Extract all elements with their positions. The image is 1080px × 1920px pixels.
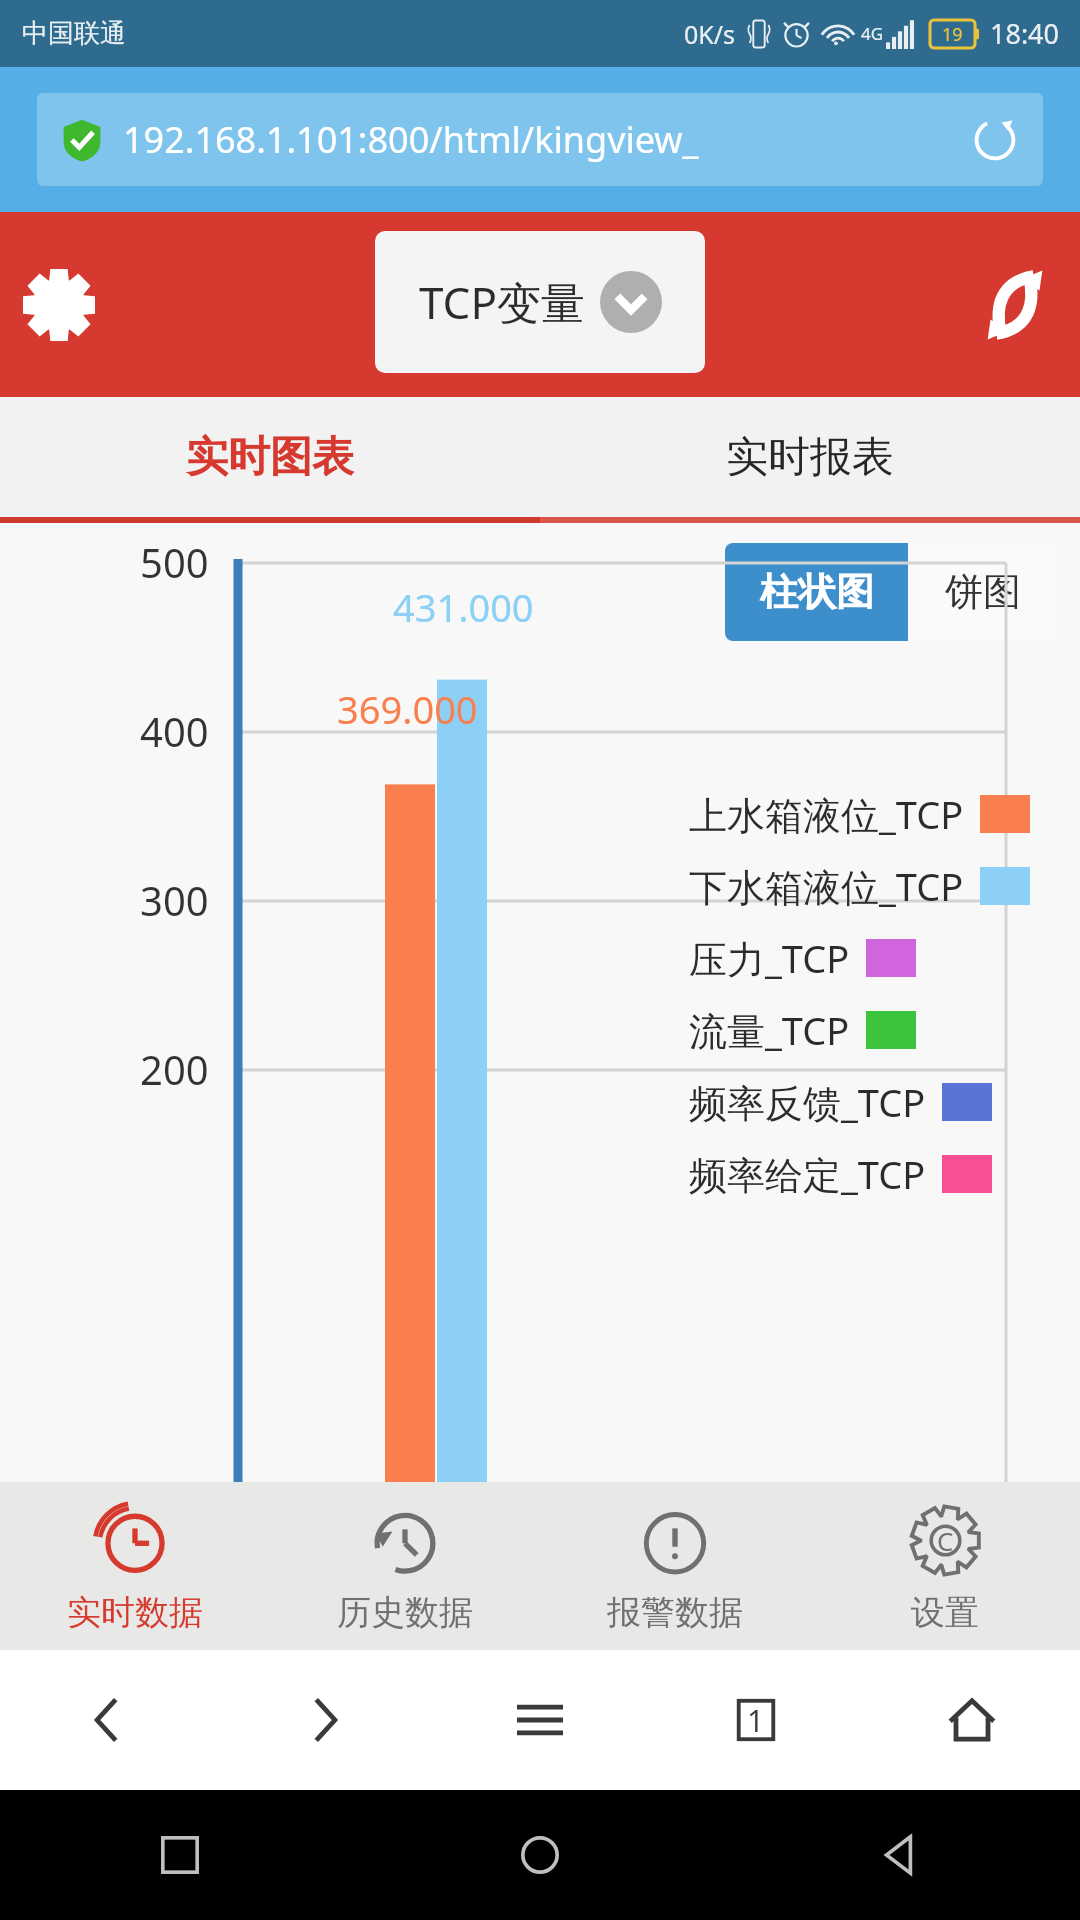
staticText: 频率反馈_TCP bbox=[689, 1076, 926, 1128]
button[interactable]: 实时报表 bbox=[540, 397, 1080, 517]
button[interactable]: 压力_TCP bbox=[689, 922, 916, 994]
staticText: 300 bbox=[140, 873, 209, 927]
button[interactable]: Reload bbox=[969, 114, 1021, 166]
staticText: 频率给定_TCP bbox=[689, 1148, 926, 1200]
staticText: 实时图表 bbox=[186, 431, 354, 484]
staticText: C bbox=[937, 1523, 954, 1558]
staticText: 报警数据 bbox=[607, 1591, 743, 1634]
button[interactable]: 192.168.1.101:800/html/kingview_ bbox=[37, 93, 1043, 186]
staticText: 压力_TCP bbox=[689, 932, 850, 984]
button[interactable]: Home bbox=[864, 1650, 1080, 1790]
button[interactable]: C bbox=[810, 1482, 1080, 1650]
button[interactable]: 历史数据 bbox=[270, 1482, 540, 1650]
button[interactable]: 下水箱液位_TCP bbox=[689, 850, 1030, 922]
button[interactable]: 频率反馈_TCP bbox=[689, 1066, 992, 1138]
staticText: 设置 bbox=[911, 1591, 979, 1634]
staticText: 200 bbox=[140, 1042, 209, 1096]
button[interactable]: 频率给定_TCP bbox=[689, 1138, 992, 1210]
button[interactable]: 实时图表 bbox=[0, 397, 540, 517]
staticText: 431.000 bbox=[393, 581, 534, 633]
button[interactable]: Refresh bbox=[966, 256, 1064, 354]
staticText: 实时报表 bbox=[726, 431, 894, 484]
button[interactable]: Recents bbox=[0, 1790, 360, 1920]
button[interactable]: Back bbox=[720, 1790, 1080, 1920]
button[interactable]: 饼图 bbox=[908, 543, 1058, 641]
button[interactable]: Back bbox=[0, 1650, 216, 1790]
button[interactable]: Home bbox=[360, 1790, 720, 1920]
staticText: 369.000 bbox=[337, 683, 478, 735]
staticText: 饼图 bbox=[945, 568, 1021, 616]
staticText: 18:40 bbox=[990, 15, 1060, 52]
staticText: 4G bbox=[861, 22, 884, 45]
button[interactable]: Tabs bbox=[648, 1650, 864, 1790]
button[interactable]: 实时数据 bbox=[0, 1482, 270, 1650]
staticText: 历史数据 bbox=[337, 1591, 473, 1634]
staticText: 1 bbox=[747, 1700, 765, 1741]
button[interactable]: 报警数据 bbox=[540, 1482, 810, 1650]
staticText: 192.168.1.101:800/html/kingview_ bbox=[123, 115, 969, 164]
button[interactable]: 柱状图 bbox=[725, 543, 908, 641]
button[interactable]: 流量_TCP bbox=[689, 994, 916, 1066]
staticText: 0K/s bbox=[684, 17, 736, 51]
button[interactable]: Forward bbox=[216, 1650, 432, 1790]
staticText: 中国联通 bbox=[22, 17, 126, 50]
staticText: 下水箱液位_TCP bbox=[689, 860, 964, 912]
button[interactable]: TCP变量 bbox=[375, 231, 705, 373]
button[interactable]: Menu bbox=[432, 1650, 648, 1790]
staticText: 400 bbox=[140, 704, 209, 758]
button[interactable]: Settings bbox=[10, 256, 108, 354]
staticText: 上水箱液位_TCP bbox=[689, 788, 964, 840]
staticText: 柱状图 bbox=[760, 568, 874, 616]
staticText: 500 bbox=[140, 535, 209, 589]
staticText: 实时数据 bbox=[67, 1591, 203, 1634]
staticText: 流量_TCP bbox=[689, 1004, 850, 1056]
staticText: 19 bbox=[942, 22, 963, 47]
button[interactable]: 上水箱液位_TCP bbox=[689, 778, 1030, 850]
staticText: TCP变量 bbox=[419, 272, 586, 332]
